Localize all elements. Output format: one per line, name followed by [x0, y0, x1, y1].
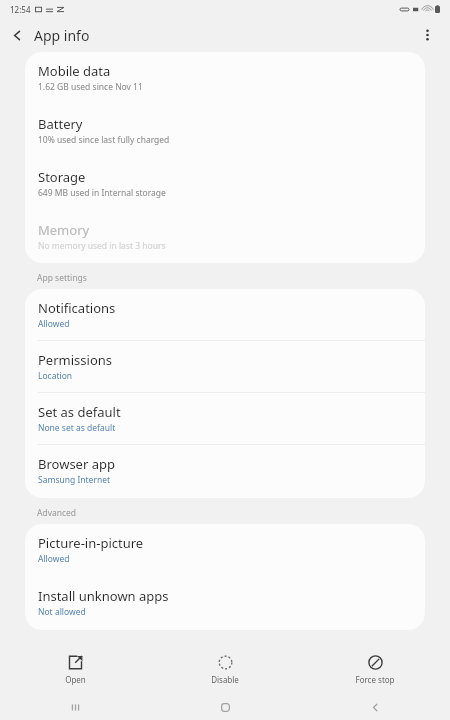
- staticText: Open: [65, 674, 86, 685]
- staticText: Memory: [38, 221, 90, 239]
- staticText: Install unknown apps: [38, 587, 169, 605]
- button[interactable]: Battery: [25, 106, 425, 159]
- staticText: 1.62 GB used since Nov 11: [38, 81, 143, 93]
- button[interactable]: Recent apps: [0, 694, 150, 720]
- staticText: Battery: [38, 115, 83, 133]
- staticText: Advanced: [37, 507, 77, 519]
- button[interactable]: Back: [300, 694, 450, 720]
- staticText: Picture-in-picture: [38, 534, 144, 552]
- staticText: Force stop: [355, 674, 395, 685]
- staticText: Disable: [211, 674, 239, 685]
- staticText: No memory used in last 3 hours: [38, 240, 166, 252]
- staticText: Samsung Internet: [38, 474, 111, 486]
- button[interactable]: Disable: [150, 646, 300, 694]
- staticText: Mobile data: [38, 62, 111, 80]
- staticText: 12:54: [10, 4, 31, 15]
- button[interactable]: Set as default: [25, 393, 425, 444]
- staticText: Allowed: [38, 318, 70, 330]
- staticText: Not allowed: [38, 606, 86, 618]
- staticText: App settings: [37, 272, 87, 284]
- staticText: Permissions: [38, 351, 113, 369]
- button[interactable]: Storage: [25, 159, 425, 212]
- staticText: Allowed: [38, 553, 70, 565]
- button[interactable]: Browser app: [25, 445, 425, 498]
- staticText: Notifications: [38, 299, 116, 317]
- button[interactable]: Mobile data: [25, 52, 425, 106]
- staticText: Storage: [38, 168, 86, 186]
- staticText: 10% used since last fully charged: [38, 134, 170, 146]
- button[interactable]: Picture-in-picture: [25, 524, 425, 578]
- button[interactable]: Home: [150, 694, 300, 720]
- button[interactable]: Notifications: [25, 289, 425, 340]
- button[interactable]: Memory: [25, 212, 425, 263]
- staticText: 649 MB used in Internal storage: [38, 187, 166, 199]
- button[interactable]: Open: [0, 646, 150, 694]
- staticText: Set as default: [38, 403, 121, 421]
- button[interactable]: Back: [0, 18, 34, 52]
- button[interactable]: Permissions: [25, 341, 425, 392]
- staticText: App info: [34, 26, 90, 45]
- button[interactable]: Force stop: [300, 646, 450, 694]
- staticText: Browser app: [38, 455, 115, 473]
- staticText: None set as default: [38, 422, 116, 434]
- staticText: Location: [38, 370, 73, 382]
- button[interactable]: Install unknown apps: [25, 578, 425, 630]
- button[interactable]: More options: [410, 18, 444, 52]
